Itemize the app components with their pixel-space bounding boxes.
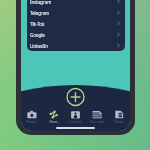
button[interactable]: Add	[67, 88, 85, 106]
button[interactable]: News	[42, 107, 64, 127]
staticText: Telegram	[30, 10, 50, 16]
button[interactable]: LinkedIn	[27, 40, 125, 51]
button[interactable]: Tik-Tok	[27, 18, 125, 29]
staticText: LinkedIn	[30, 43, 48, 49]
staticText: Contacts	[68, 120, 82, 124]
staticText: Notes	[115, 120, 124, 124]
staticText: News	[49, 120, 58, 124]
staticText: Tik-Tok	[30, 21, 45, 27]
button[interactable]: Telegram	[27, 7, 125, 18]
button[interactable]: Doc scan	[86, 107, 108, 127]
button[interactable]: Google	[27, 29, 125, 40]
staticText: Instagram	[30, 0, 52, 5]
button[interactable]: Contacts	[64, 107, 86, 127]
staticText: Doc scan	[90, 120, 104, 124]
button[interactable]: Photos	[21, 107, 42, 127]
button[interactable]: Instagram	[27, 0, 125, 7]
button[interactable]: Notes	[108, 107, 130, 127]
staticText: Google	[30, 32, 45, 38]
staticText: Photos	[26, 120, 37, 124]
